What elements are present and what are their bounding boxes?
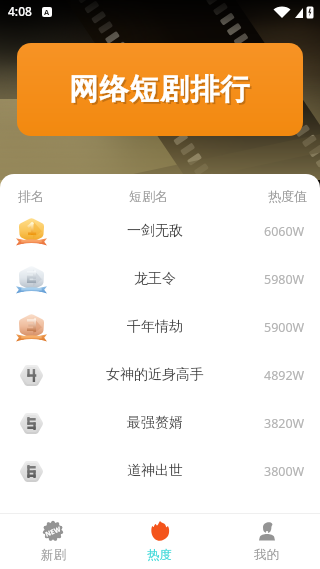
staticText: A	[44, 7, 50, 17]
button[interactable]: 最强赘婿	[0, 399, 320, 447]
button[interactable]: 一剑无敌	[0, 207, 320, 255]
staticText: 新剧	[41, 547, 66, 563]
staticText: 一剑无敌	[127, 222, 183, 240]
staticText: NEW	[44, 524, 62, 539]
staticText: 我的	[254, 547, 279, 563]
staticText: 排名	[18, 188, 44, 204]
staticText: 女神的近身高手	[106, 366, 204, 384]
staticText: 热度	[147, 547, 172, 563]
staticText: 4892W	[264, 367, 305, 384]
staticText: 6060W	[264, 223, 305, 240]
staticText: 网络短剧排行	[71, 73, 253, 110]
staticText: 千年情劫	[127, 318, 183, 336]
staticText: 最强赘婿	[127, 414, 183, 432]
staticText: 3800W	[264, 463, 305, 480]
staticText: 热度值	[268, 188, 307, 204]
button[interactable]: 女神的近身高手	[0, 351, 320, 399]
staticText: 道神出世	[127, 462, 183, 480]
staticText: 5900W	[264, 319, 305, 336]
button[interactable]: 我的	[213, 514, 320, 569]
button[interactable]: 道神出世	[0, 447, 320, 495]
button[interactable]: 龙王令	[0, 255, 320, 303]
button[interactable]: 网络短剧排行	[17, 43, 303, 136]
button[interactable]: 热度	[106, 514, 213, 569]
button[interactable]: 新剧	[0, 514, 106, 569]
staticText: 龙王令	[134, 270, 176, 288]
staticText: 短剧名	[129, 188, 168, 204]
staticText: 4:08	[8, 3, 32, 19]
staticText: 网络短剧排行	[69, 71, 251, 108]
staticText: 3820W	[264, 415, 305, 432]
staticText: 5980W	[264, 271, 305, 288]
button[interactable]: 千年情劫	[0, 303, 320, 351]
